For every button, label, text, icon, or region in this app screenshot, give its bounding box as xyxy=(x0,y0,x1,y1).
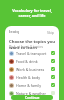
staticText: Pick at least 3 topics xyxy=(9,44,43,49)
button[interactable]: Food & drink xyxy=(5,57,59,65)
button[interactable]: Skip xyxy=(47,30,55,35)
button[interactable]: Selected xyxy=(51,51,55,55)
button[interactable]: Work & business xyxy=(5,65,59,73)
staticText: Skip xyxy=(47,30,55,35)
staticText: Health & body xyxy=(16,75,51,80)
staticText: Nature & weather xyxy=(16,91,51,96)
button[interactable]: Not selected xyxy=(51,91,55,95)
button[interactable]: Nature & weather xyxy=(5,89,59,97)
button[interactable]: Continue xyxy=(11,95,53,100)
staticText: Choose the topics you want to learn xyxy=(9,39,59,51)
button[interactable]: Travel & transport xyxy=(5,49,59,57)
button[interactable]: Selected xyxy=(51,59,55,63)
button[interactable]: Home & family xyxy=(5,81,59,89)
staticText: Home & family xyxy=(16,83,51,88)
button[interactable]: Selected xyxy=(51,75,55,79)
staticText: lexiq xyxy=(9,29,19,35)
staticText: Continue xyxy=(25,96,40,100)
staticText: Food & drink xyxy=(16,59,51,64)
staticText: Travel & transport xyxy=(16,51,51,56)
staticText: Work & business xyxy=(16,67,51,72)
button[interactable]: Health & body xyxy=(5,73,59,81)
staticText: Vocabulary for travel, career, and life xyxy=(0,8,64,18)
button[interactable]: Selected xyxy=(51,83,55,87)
button[interactable]: Selected xyxy=(51,67,55,71)
